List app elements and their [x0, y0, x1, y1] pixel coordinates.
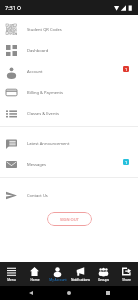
staticText: Share: [122, 278, 131, 282]
staticText: Notifications: [71, 278, 90, 282]
staticText: Groups: [98, 278, 109, 282]
staticText: Billing & Payments: [27, 90, 64, 96]
button[interactable]: Groups: [92, 262, 115, 286]
staticText: Messages: [27, 162, 47, 168]
staticText: Account: [27, 69, 43, 75]
staticText: My Account: [49, 278, 67, 282]
button[interactable]: Home: [23, 262, 46, 286]
button[interactable]: Contact Us: [0, 185, 138, 206]
staticText: Student QR Codes: [27, 27, 62, 33]
button[interactable]: Dashboard: [0, 40, 138, 61]
staticText: 1: [125, 67, 128, 72]
button[interactable]: Classes & Events: [0, 103, 138, 124]
button[interactable]: Share: [115, 262, 138, 286]
staticText: SIGN OUT: [60, 217, 79, 222]
button[interactable]: Messages: [0, 154, 138, 175]
button[interactable]: SIGN OUT: [47, 212, 92, 226]
button[interactable]: Student QR Codes: [0, 19, 138, 40]
staticText: 1: [125, 160, 128, 165]
staticText: Latest Announcement: [27, 141, 70, 147]
button[interactable]: Latest Announcement: [0, 133, 138, 154]
staticText: Menu: [7, 278, 16, 282]
button[interactable]: Back: [23, 286, 39, 300]
button[interactable]: Notifications: [69, 262, 92, 286]
staticText: 7:31: [5, 4, 16, 11]
button[interactable]: Account: [0, 61, 138, 82]
button[interactable]: Home: [61, 286, 77, 300]
button[interactable]: My Account: [46, 262, 69, 286]
button[interactable]: Billing & Payments: [0, 82, 138, 103]
staticText: Contact Us: [27, 193, 48, 199]
staticText: Classes & Events: [27, 111, 59, 117]
button[interactable]: Menu: [0, 262, 23, 286]
button[interactable]: Recent apps: [100, 286, 116, 300]
staticText: Dashboard: [27, 48, 49, 54]
staticText: Home: [30, 278, 40, 282]
